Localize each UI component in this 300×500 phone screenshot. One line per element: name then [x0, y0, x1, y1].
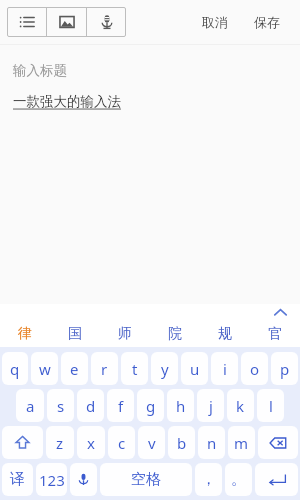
- button[interactable]: d: [77, 389, 104, 422]
- staticText: j: [209, 396, 213, 416]
- staticText: 一款强大的输入法: [13, 93, 121, 110]
- button[interactable]: y: [151, 352, 178, 385]
- staticText: f: [118, 396, 124, 416]
- button[interactable]: m: [228, 426, 255, 459]
- staticText: m: [234, 433, 249, 453]
- staticText: y: [161, 359, 169, 379]
- staticText: r: [101, 359, 108, 379]
- button[interactable]: e: [61, 352, 88, 385]
- button[interactable]: q: [2, 352, 28, 385]
- button[interactable]: 官: [250, 321, 300, 347]
- button[interactable]: Shift: [2, 426, 43, 459]
- staticText: t: [132, 359, 138, 379]
- button[interactable]: o: [241, 352, 268, 385]
- staticText: g: [146, 396, 156, 416]
- button[interactable]: 123: [36, 463, 67, 496]
- button[interactable]: u: [181, 352, 208, 385]
- staticText: x: [87, 433, 95, 453]
- staticText: o: [250, 359, 260, 379]
- staticText: 取消: [202, 14, 228, 30]
- staticText: v: [148, 433, 156, 453]
- staticText: a: [26, 396, 35, 416]
- button[interactable]: i: [211, 352, 238, 385]
- button[interactable]: 输入标题: [0, 45, 300, 304]
- staticText: p: [280, 359, 290, 379]
- staticText: d: [86, 396, 96, 416]
- staticText: ，: [201, 470, 216, 489]
- button[interactable]: b: [168, 426, 195, 459]
- staticText: 保存: [254, 14, 280, 30]
- staticText: c: [118, 433, 126, 453]
- button[interactable]: 院: [150, 321, 200, 347]
- staticText: 空格: [131, 470, 161, 489]
- button[interactable]: 规: [200, 321, 250, 347]
- button[interactable]: 空格: [100, 463, 192, 496]
- button[interactable]: g: [137, 389, 164, 422]
- button[interactable]: h: [167, 389, 194, 422]
- button[interactable]: l: [257, 389, 284, 422]
- button[interactable]: Enter: [255, 463, 298, 496]
- staticText: 输入标题: [13, 62, 67, 79]
- staticText: 官: [268, 325, 282, 343]
- staticText: s: [57, 396, 65, 416]
- staticText: 译: [10, 470, 25, 489]
- button[interactable]: 保存: [248, 10, 286, 34]
- staticText: l: [269, 396, 273, 416]
- button[interactable]: Backspace: [258, 426, 298, 459]
- button[interactable]: a: [16, 389, 44, 422]
- staticText: h: [176, 396, 186, 416]
- staticText: z: [56, 433, 64, 453]
- button[interactable]: z: [46, 426, 74, 459]
- button[interactable]: 国: [50, 321, 100, 347]
- staticText: q: [10, 359, 20, 379]
- button[interactable]: x: [77, 426, 105, 459]
- button[interactable]: Voice input: [87, 7, 126, 37]
- button[interactable]: s: [47, 389, 74, 422]
- button[interactable]: t: [121, 352, 148, 385]
- staticText: e: [70, 359, 79, 379]
- button[interactable]: Voice input: [70, 463, 97, 496]
- button[interactable]: Insert image: [47, 7, 86, 37]
- button[interactable]: 译: [2, 463, 33, 496]
- button[interactable]: f: [107, 389, 134, 422]
- staticText: 国: [68, 325, 82, 343]
- button[interactable]: r: [91, 352, 118, 385]
- staticText: k: [236, 396, 245, 416]
- button[interactable]: Hide keyboard: [268, 304, 292, 321]
- button[interactable]: 。: [225, 463, 252, 496]
- button[interactable]: List: [7, 7, 46, 37]
- staticText: n: [207, 433, 217, 453]
- staticText: 。: [231, 470, 246, 489]
- staticText: b: [177, 433, 187, 453]
- button[interactable]: 师: [100, 321, 150, 347]
- staticText: 律: [18, 325, 32, 343]
- button[interactable]: p: [271, 352, 298, 385]
- button[interactable]: w: [31, 352, 58, 385]
- staticText: w: [39, 359, 51, 379]
- staticText: 规: [218, 325, 232, 343]
- button[interactable]: 取消: [196, 10, 234, 34]
- button[interactable]: c: [108, 426, 135, 459]
- staticText: i: [223, 359, 227, 379]
- staticText: 院: [168, 325, 182, 343]
- button[interactable]: k: [227, 389, 254, 422]
- staticText: 师: [118, 325, 132, 343]
- button[interactable]: j: [197, 389, 224, 422]
- button[interactable]: v: [138, 426, 165, 459]
- button[interactable]: 律: [0, 321, 50, 347]
- button[interactable]: n: [198, 426, 225, 459]
- button[interactable]: ，: [195, 463, 222, 496]
- staticText: u: [190, 359, 200, 379]
- staticText: 123: [39, 470, 65, 490]
